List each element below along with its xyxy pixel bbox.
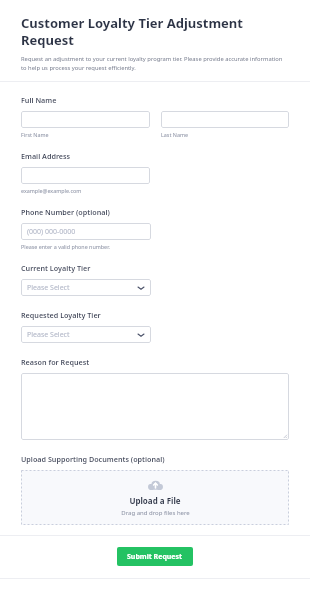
button[interactable]: Current Loyalty Tier xyxy=(21,279,151,296)
staticText: First Name xyxy=(21,131,49,138)
staticText: example@example.com xyxy=(21,187,82,194)
staticText: Drag and drop files here xyxy=(121,509,190,517)
button[interactable]: Reason for Request xyxy=(21,373,289,440)
staticText: Please enter a valid phone number. xyxy=(21,243,110,250)
staticText: Email Address xyxy=(21,151,71,161)
staticText: Last Name xyxy=(161,131,188,138)
staticText: (000) 000-0000 xyxy=(27,227,76,237)
button[interactable]: Submit Request xyxy=(117,547,193,566)
staticText: Reason for Request xyxy=(21,357,90,367)
staticText: Please Select xyxy=(27,283,70,293)
staticText: Customer Loyalty Tier Adjustment Request xyxy=(21,14,289,49)
staticText: Please Select xyxy=(27,330,70,340)
staticText: Upload Supporting Documents (optional) xyxy=(21,454,165,464)
button[interactable]: First Name xyxy=(21,111,150,128)
button[interactable]: Last Name xyxy=(161,111,289,128)
button[interactable]: Phone Number xyxy=(21,223,151,240)
staticText: Submit Request xyxy=(127,552,183,562)
staticText: Current Loyalty Tier xyxy=(21,263,91,273)
button[interactable]: Upload a File xyxy=(21,470,289,525)
staticText: Phone Number (optional) xyxy=(21,207,110,217)
staticText: Full Name xyxy=(21,95,57,105)
staticText: Request an adjustment to your current lo… xyxy=(21,55,289,71)
button[interactable]: Requested Loyalty Tier xyxy=(21,326,151,343)
staticText: Requested Loyalty Tier xyxy=(21,310,101,320)
staticText: Upload a File xyxy=(129,495,181,506)
button[interactable]: Email Address xyxy=(21,167,150,184)
